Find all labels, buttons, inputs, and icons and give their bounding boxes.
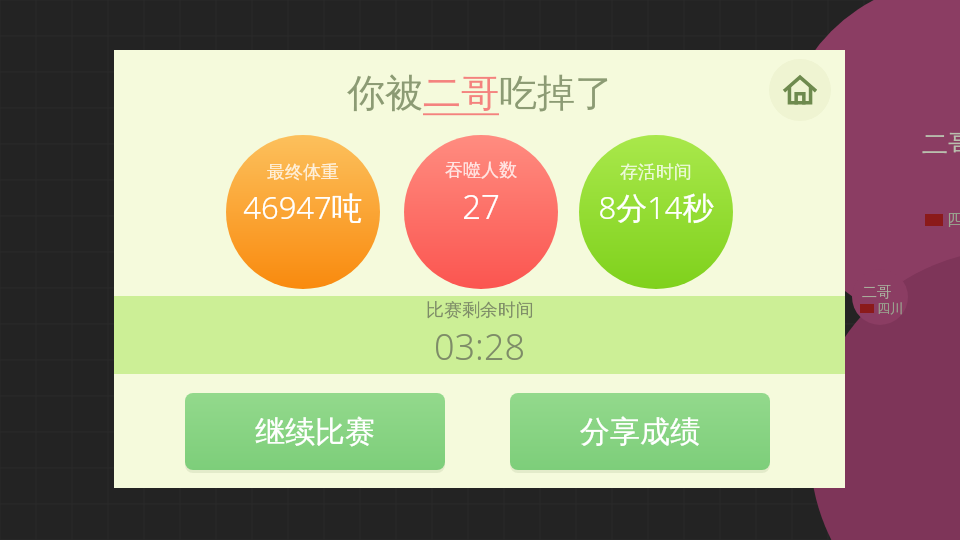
- button[interactable]: Home: [769, 59, 831, 121]
- staticText: 四川: [877, 300, 903, 316]
- staticText: 存活时间: [620, 161, 692, 184]
- staticText: 继续比赛: [255, 413, 375, 451]
- staticText: 你被: [347, 69, 423, 117]
- staticText: 最终体重: [267, 161, 339, 184]
- staticText: 吞噬人数: [445, 159, 517, 182]
- button[interactable]: 分享成绩: [510, 393, 770, 470]
- staticText: 比赛剩余时间: [426, 299, 534, 322]
- staticText: 27: [462, 184, 500, 229]
- staticText: 03:28: [434, 322, 526, 371]
- button[interactable]: 继续比赛: [185, 393, 445, 470]
- button[interactable]: 吞噬人数: [404, 135, 558, 289]
- staticText: 二哥: [862, 283, 892, 302]
- button[interactable]: 最终体重: [226, 135, 380, 289]
- staticText: 二哥: [922, 128, 960, 161]
- staticText: 分享成绩: [580, 413, 700, 451]
- staticText: 46947吨: [243, 186, 363, 228]
- button[interactable]: 存活时间: [579, 135, 733, 289]
- staticText: 四: [947, 210, 960, 230]
- staticText: 二哥: [423, 69, 499, 117]
- staticText: 吃掉了: [499, 69, 613, 117]
- staticText: 8分14秒: [598, 186, 714, 228]
